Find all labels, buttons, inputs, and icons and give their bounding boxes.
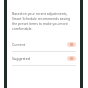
button[interactable]: Current [9,38,78,51]
staticText: Current [12,42,25,47]
staticText: Suggested [12,56,30,61]
button[interactable]: Toggle Current [67,42,76,47]
button[interactable]: Suggested [9,52,78,65]
staticText: Based on your recent adjustments, Smart … [12,11,75,31]
button[interactable]: Toggle Suggested [67,56,76,61]
